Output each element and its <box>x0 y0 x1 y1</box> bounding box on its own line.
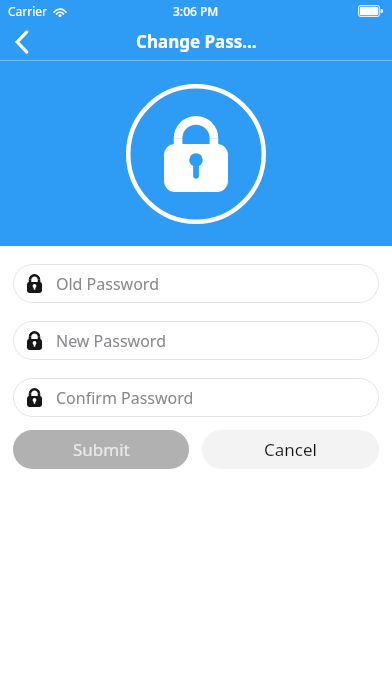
staticText: Carrier <box>8 3 48 19</box>
staticText: New Password <box>56 330 166 352</box>
staticText: Cancel <box>264 438 317 461</box>
staticText: Confirm Password <box>56 387 194 409</box>
button[interactable]: Old Password <box>13 264 379 303</box>
staticText: Change Pass... <box>136 30 257 53</box>
button[interactable]: New Password <box>13 321 379 360</box>
button[interactable]: Submit <box>13 430 189 469</box>
staticText: Submit <box>73 438 130 461</box>
button[interactable]: Cancel <box>202 430 379 469</box>
button[interactable]: Confirm Password <box>13 378 379 417</box>
staticText: Old Password <box>56 273 159 295</box>
button[interactable]: Back <box>0 22 44 61</box>
staticText: 3:06 PM <box>173 3 219 19</box>
